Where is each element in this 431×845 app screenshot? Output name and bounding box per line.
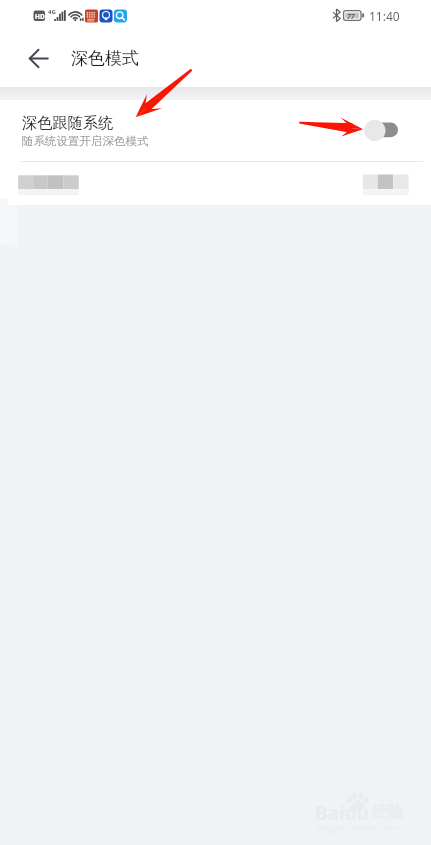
staticText: 深色跟随系统 (22, 113, 114, 132)
staticText: 4G (48, 8, 56, 16)
staticText: 11:40 (369, 8, 400, 24)
staticText: 经验 (372, 802, 403, 822)
staticText: 随系统设置开启深色模式 (22, 134, 149, 148)
staticText: 77 (347, 12, 355, 22)
button[interactable]: Follow system dark mode switch (360, 112, 412, 148)
button[interactable]: Back (21, 41, 56, 76)
staticText: 深色模式 (71, 48, 139, 69)
button[interactable]: 深色跟随系统 (0, 100, 431, 161)
staticText: HD (35, 12, 45, 21)
staticText: Baidu (315, 800, 370, 826)
